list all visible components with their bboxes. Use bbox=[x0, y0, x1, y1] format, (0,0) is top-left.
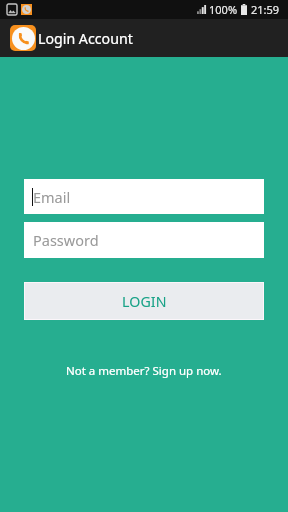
button[interactable]: Password input field bbox=[24, 222, 264, 258]
button[interactable]: LOGIN bbox=[25, 283, 263, 319]
button[interactable]: Email input field bbox=[24, 179, 264, 214]
staticText: Not a member? Sign up now. bbox=[66, 363, 222, 379]
button[interactable]: Not a member? Sign up now. bbox=[24, 359, 264, 383]
staticText: 21:59 bbox=[251, 2, 280, 17]
staticText: Password bbox=[33, 230, 99, 250]
staticText: LOGIN bbox=[122, 292, 167, 311]
staticText: Email bbox=[33, 187, 71, 207]
other: App icon bbox=[10, 25, 36, 51]
staticText: Login Account bbox=[38, 29, 133, 48]
staticText: 100% bbox=[209, 2, 238, 17]
